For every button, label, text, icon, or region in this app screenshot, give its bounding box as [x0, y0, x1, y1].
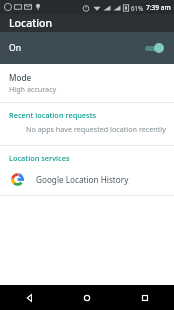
button[interactable]: Google Location History [0, 166, 174, 195]
staticText: Location services [9, 153, 70, 163]
button[interactable]: Location toggle [143, 42, 165, 54]
staticText: Recent location requests [9, 110, 97, 120]
staticText: Google Location History [36, 174, 129, 185]
staticText: No apps have requested location recently [26, 124, 166, 134]
staticText: Mode [9, 72, 32, 83]
button[interactable]: Mode [0, 64, 174, 102]
staticText: On [9, 42, 21, 54]
button[interactable]: On [0, 32, 174, 64]
staticText: Location [9, 16, 53, 30]
staticText: 7:39 am [146, 3, 171, 12]
staticText: High accuracy [9, 84, 57, 94]
button[interactable]: Back [0, 285, 58, 310]
button[interactable]: Recent apps [116, 285, 174, 310]
staticText: 61% [131, 4, 144, 12]
button[interactable]: Home [58, 285, 116, 310]
